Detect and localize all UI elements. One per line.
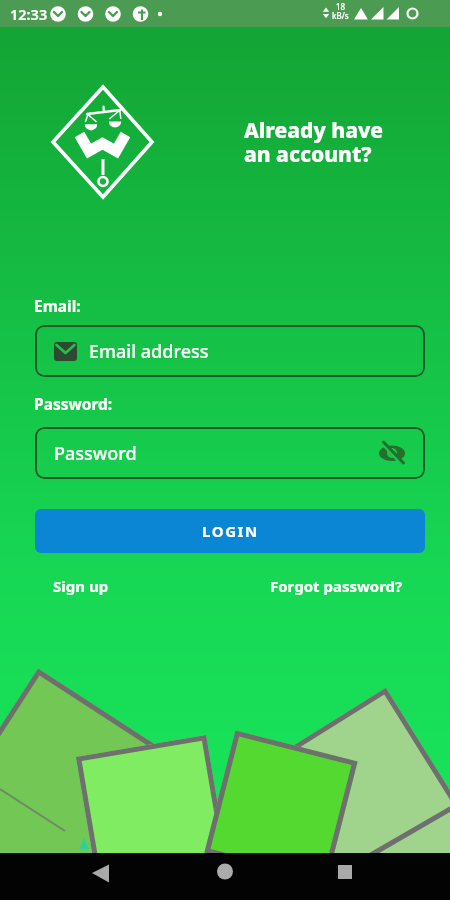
button[interactable]: Sign up xyxy=(47,570,115,602)
button[interactable] xyxy=(328,856,362,888)
staticText: Email: xyxy=(34,295,81,316)
button[interactable] xyxy=(80,856,114,888)
staticText: Forgot password? xyxy=(270,576,403,596)
staticText: kB/s xyxy=(332,10,349,21)
staticText: LOGIN xyxy=(202,521,259,541)
button[interactable]: LOGIN xyxy=(35,509,425,553)
staticText: Sign up xyxy=(53,576,109,596)
staticText: 12:33 xyxy=(10,4,48,24)
button[interactable] xyxy=(208,856,242,888)
button[interactable]: Email address xyxy=(35,325,425,377)
staticText: Already have an account? xyxy=(244,116,384,169)
button[interactable]: Forgot password? xyxy=(264,570,409,602)
button[interactable]: Password xyxy=(35,427,425,479)
staticText: Password: xyxy=(34,393,113,414)
button[interactable] xyxy=(376,438,408,468)
staticText: Email address xyxy=(89,339,209,364)
staticText: Password xyxy=(54,441,137,466)
staticText: 18 xyxy=(336,1,346,12)
